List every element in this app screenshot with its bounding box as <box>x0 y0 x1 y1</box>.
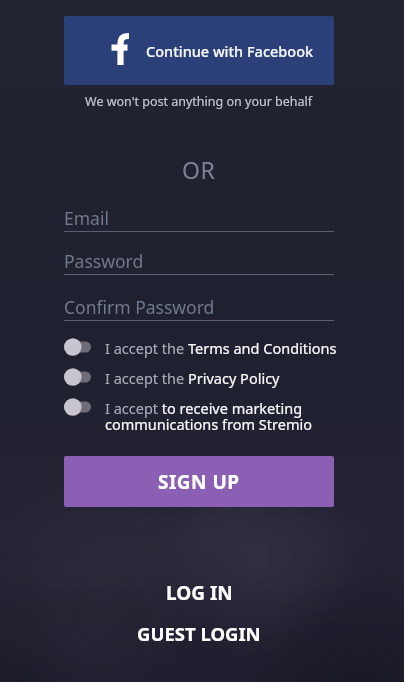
staticText: GUEST LOGIN <box>137 621 261 646</box>
button[interactable]: Email <box>64 206 334 232</box>
staticText: Continue with Facebook <box>146 41 314 61</box>
staticText: LOG IN <box>166 580 233 606</box>
button[interactable]: I accept the Terms and Conditions <box>64 338 401 358</box>
button[interactable]: GUEST LOGIN <box>137 621 261 646</box>
button[interactable]: Password <box>64 249 334 275</box>
button[interactable]: Continue with Facebook <box>64 16 334 85</box>
button[interactable]: Confirm Password <box>64 295 334 321</box>
staticText: Email <box>64 206 109 230</box>
button[interactable]: LOG IN <box>166 580 233 606</box>
staticText: I accept to receive marketing communicat… <box>105 398 312 434</box>
staticText: Password <box>64 249 144 273</box>
staticText: OR <box>182 154 216 185</box>
button[interactable]: I accept the Privacy Policy <box>64 368 401 388</box>
staticText: SIGN UP <box>158 469 240 495</box>
staticText: I accept the Terms and Conditions <box>105 338 337 358</box>
staticText: We won't post anything on your behalf <box>85 93 313 110</box>
staticText: Confirm Password <box>64 295 215 319</box>
button[interactable]: SIGN UP <box>64 456 334 507</box>
button[interactable]: I accept to receive marketing communicat… <box>64 398 401 434</box>
staticText: I accept the Privacy Policy <box>105 368 280 388</box>
